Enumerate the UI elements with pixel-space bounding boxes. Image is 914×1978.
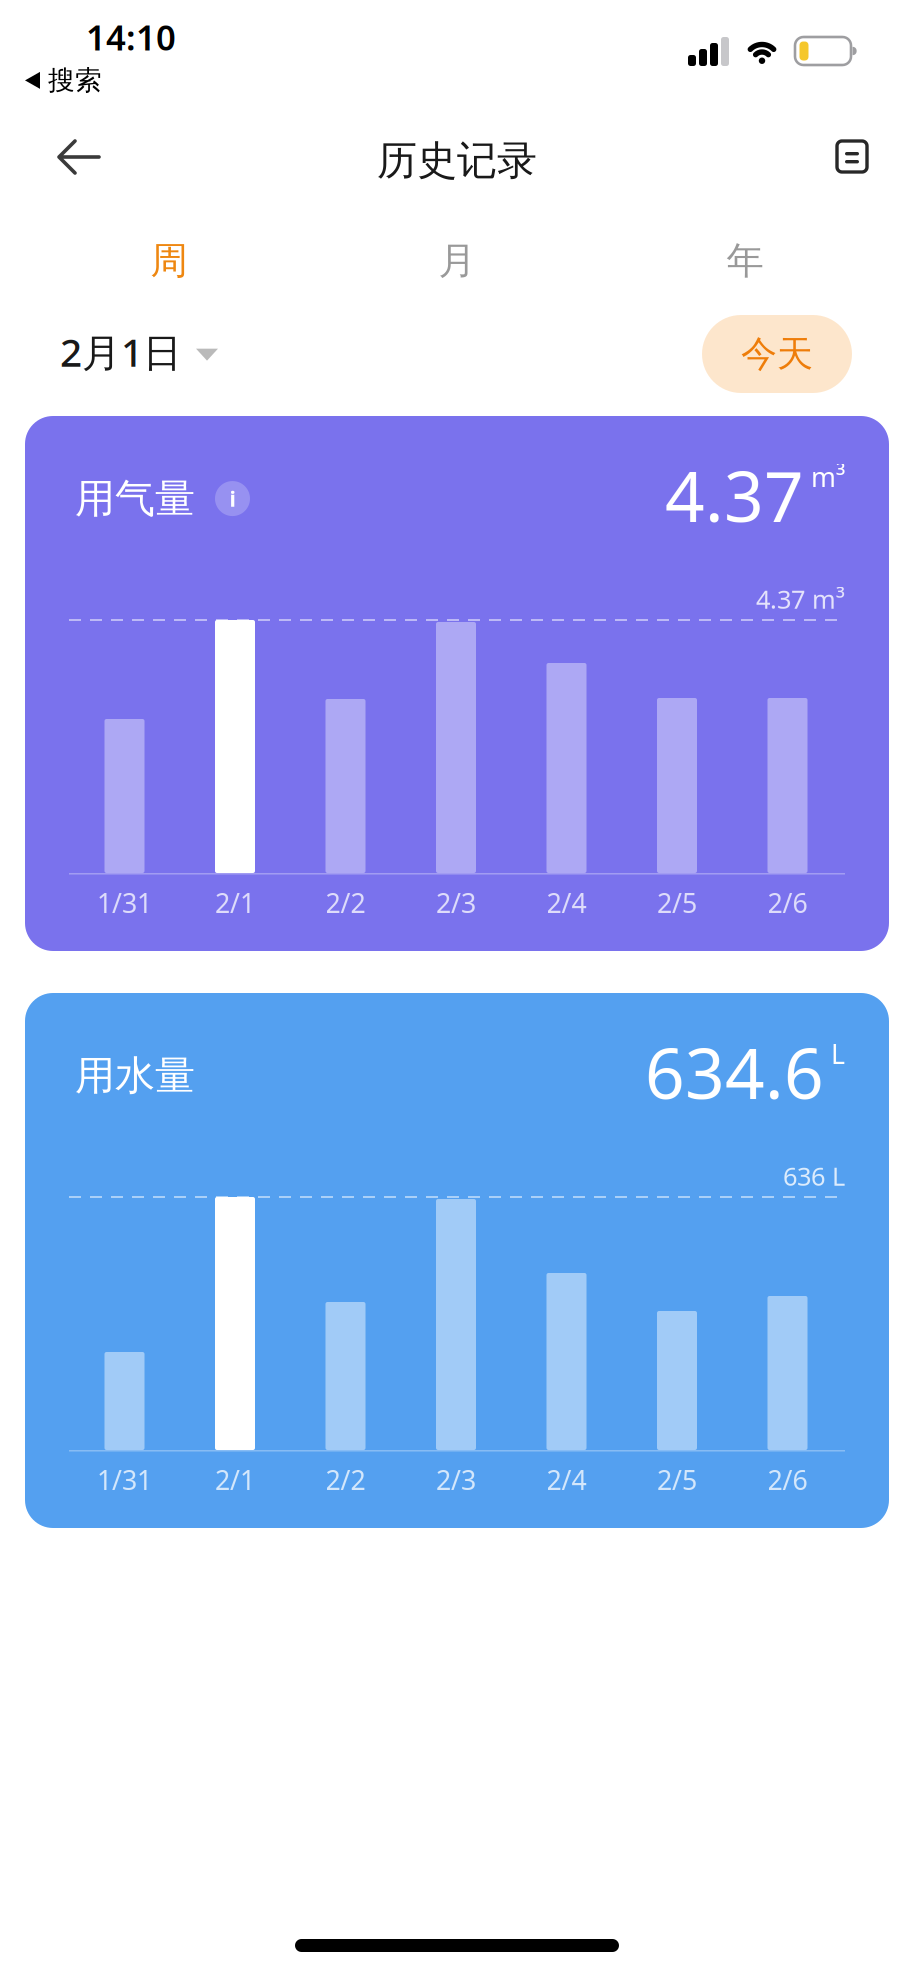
button[interactable]: 选择日期 [60,326,218,377]
staticText: 2/6 [767,885,807,920]
staticText: 2/6 [767,1462,807,1497]
staticText: 2/5 [657,1462,697,1497]
button[interactable]: 今天 [702,315,852,393]
staticText: 2/2 [325,885,365,920]
staticText: 历史记录 [377,136,537,185]
staticText: 2月1日 [60,326,182,377]
button[interactable]: 账单 [837,141,867,172]
staticText: 634.6 [645,1026,824,1118]
staticText: 月 [438,238,475,284]
button[interactable]: 周 [25,238,313,284]
staticText: 2/4 [546,1462,586,1497]
staticText: 今天 [741,332,813,376]
staticText: 1/31 [97,1462,152,1497]
staticText: 年 [726,238,763,284]
staticText: 14:10 [86,14,176,60]
staticText: 搜索 [48,64,102,97]
staticText: 636 L [783,1159,845,1193]
staticText: m³ [811,459,845,494]
staticText: 2/1 [215,885,255,920]
staticText: 2/4 [546,885,586,920]
staticText: 2/5 [657,885,697,920]
staticText: 2/1 [215,1462,255,1497]
button[interactable]: 返回 [57,140,101,174]
staticText: 2/3 [436,1462,476,1497]
staticText: 用水量 [75,1051,195,1100]
button[interactable]: 年 [601,238,889,284]
staticText: 周 [150,238,187,284]
staticText: 1/31 [97,885,152,920]
staticText: 用气量 [75,474,195,523]
staticText: i [229,484,235,513]
staticText: L [831,1036,845,1071]
button[interactable]: 月 [313,238,601,284]
button[interactable]: About 用气量 [215,481,250,516]
staticText: 4.37 [665,449,804,541]
staticText: 2/2 [325,1462,365,1497]
staticText: 2/3 [436,885,476,920]
staticText: 4.37 m³ [756,582,845,616]
button[interactable]: 返回搜索 [25,64,102,97]
